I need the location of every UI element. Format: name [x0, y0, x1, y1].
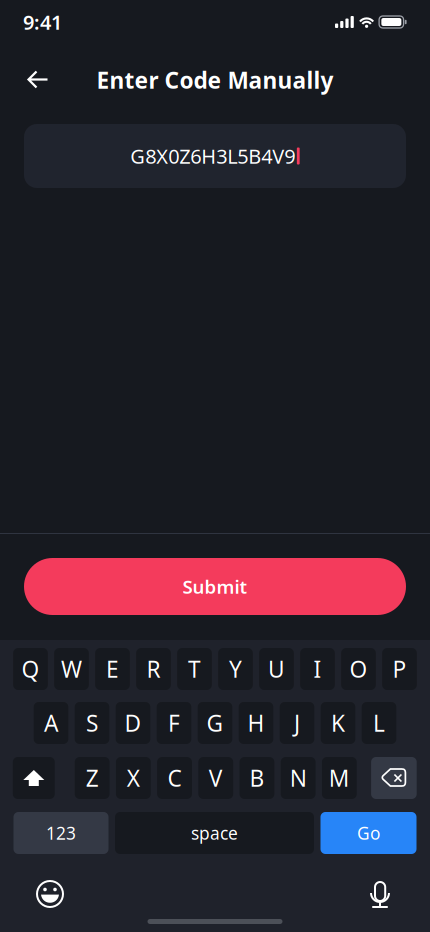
- button[interactable]: Code field, G8X0Z6H3L5B4V9: [24, 124, 406, 188]
- staticText: G: [206, 708, 223, 738]
- button[interactable]: U: [259, 648, 294, 690]
- button[interactable]: K: [321, 702, 355, 744]
- button[interactable]: X: [116, 757, 151, 799]
- button[interactable]: H: [239, 702, 273, 744]
- staticText: 9:41: [23, 9, 62, 35]
- staticText: G8X0Z6H3L5B4V9: [130, 143, 295, 169]
- staticText: Go: [357, 821, 380, 844]
- button[interactable]: G: [198, 702, 232, 744]
- staticText: V: [209, 763, 223, 793]
- button[interactable]: E: [95, 648, 130, 690]
- button[interactable]: Q: [13, 648, 48, 690]
- button[interactable]: Delete: [371, 757, 417, 799]
- staticText: L: [373, 708, 385, 738]
- staticText: R: [146, 654, 160, 684]
- staticText: I: [313, 654, 321, 684]
- staticText: Y: [229, 654, 242, 684]
- staticText: Q: [21, 654, 39, 684]
- button[interactable]: A: [34, 702, 68, 744]
- button[interactable]: N: [281, 757, 316, 799]
- button[interactable]: Shift: [13, 757, 55, 799]
- button[interactable]: W: [54, 648, 89, 690]
- button[interactable]: Z: [75, 757, 110, 799]
- staticText: W: [61, 654, 82, 684]
- button[interactable]: Dictate: [358, 876, 402, 912]
- button[interactable]: F: [157, 702, 191, 744]
- staticText: C: [167, 763, 181, 793]
- staticText: P: [392, 654, 406, 684]
- staticText: K: [331, 708, 345, 738]
- button[interactable]: S: [75, 702, 109, 744]
- button[interactable]: Y: [218, 648, 253, 690]
- staticText: Z: [86, 763, 99, 793]
- staticText: space: [191, 821, 238, 844]
- staticText: M: [329, 763, 350, 793]
- staticText: D: [124, 708, 141, 738]
- button[interactable]: space: [115, 812, 314, 854]
- staticText: E: [106, 654, 119, 684]
- staticText: J: [294, 708, 300, 738]
- staticText: 123: [46, 821, 76, 844]
- staticText: B: [249, 763, 264, 793]
- staticText: X: [127, 763, 140, 793]
- button[interactable]: D: [116, 702, 150, 744]
- staticText: F: [168, 708, 180, 738]
- button[interactable]: 123: [13, 812, 108, 854]
- staticText: Enter Code Manually: [96, 65, 333, 95]
- button[interactable]: C: [157, 757, 192, 799]
- button[interactable]: M: [322, 757, 357, 799]
- staticText: H: [247, 708, 264, 738]
- button[interactable]: I: [300, 648, 335, 690]
- staticText: O: [349, 654, 367, 684]
- staticText: U: [268, 654, 285, 684]
- button[interactable]: Go: [320, 812, 416, 854]
- button[interactable]: J: [280, 702, 314, 744]
- button[interactable]: P: [382, 648, 417, 690]
- button[interactable]: O: [341, 648, 376, 690]
- staticText: Submit: [182, 574, 247, 599]
- button[interactable]: Emoji keyboard: [28, 876, 72, 912]
- button[interactable]: V: [198, 757, 233, 799]
- button[interactable]: R: [136, 648, 171, 690]
- staticText: N: [290, 763, 307, 793]
- button[interactable]: T: [177, 648, 212, 690]
- staticText: T: [188, 654, 201, 684]
- button[interactable]: Back: [16, 58, 60, 102]
- button[interactable]: L: [362, 702, 396, 744]
- staticText: S: [86, 708, 98, 738]
- button[interactable]: B: [239, 757, 274, 799]
- staticText: A: [44, 708, 58, 738]
- button[interactable]: Submit: [24, 558, 406, 615]
